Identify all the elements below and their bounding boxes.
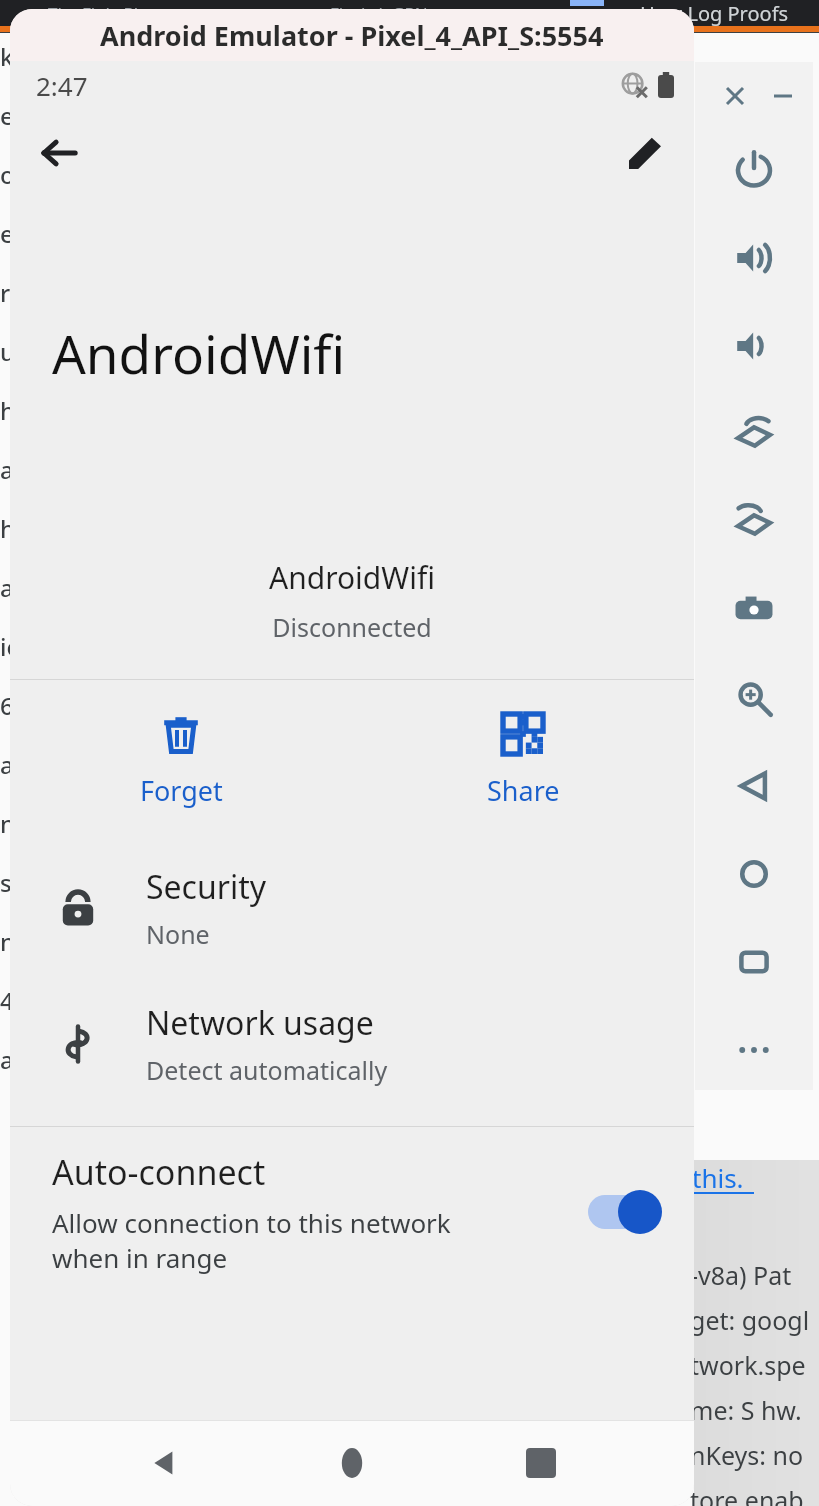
- button[interactable]: Volume up: [724, 228, 784, 288]
- staticText: 6: [0, 689, 14, 722]
- staticText: None: [146, 917, 210, 951]
- staticText: Fi i k GPN: [330, 2, 428, 25]
- staticText: Disconnected: [10, 610, 694, 644]
- staticText: Forget: [140, 772, 223, 809]
- staticText: 2:47: [36, 68, 88, 103]
- staticText: 4: [0, 984, 14, 1017]
- staticText: a: [0, 748, 14, 781]
- staticText: n: [0, 925, 16, 958]
- button[interactable]: Back: [724, 756, 784, 816]
- staticText: u: [0, 335, 16, 368]
- staticText: e: [0, 99, 14, 132]
- staticText: o: [0, 158, 15, 191]
- staticText: Android Emulator - Pixel_4_API_S:5554: [100, 17, 604, 54]
- button[interactable]: Security: [10, 840, 694, 976]
- button[interactable]: Rotate left: [724, 404, 784, 464]
- staticText: Network usage: [146, 1001, 374, 1045]
- button[interactable]: Edit: [614, 122, 676, 184]
- staticText: Security: [146, 865, 267, 909]
- button[interactable]: Close: [721, 82, 749, 110]
- button[interactable]: Forget: [10, 680, 352, 840]
- button[interactable]: Home: [317, 1428, 387, 1498]
- staticText: a: [0, 571, 14, 604]
- staticText: Share: [487, 772, 560, 809]
- staticText: nKeys: no: [690, 1438, 804, 1472]
- staticText: AndroidWifi: [52, 317, 346, 389]
- staticText: s/: [0, 866, 21, 899]
- staticText: Auto-connect: [52, 1149, 266, 1195]
- staticText: h: [0, 512, 16, 545]
- staticText: Detect automatically: [146, 1053, 388, 1087]
- button[interactable]: Auto-connect: [10, 1127, 694, 1297]
- button[interactable]: Power: [724, 140, 784, 200]
- staticText: this.: [692, 1160, 744, 1195]
- button[interactable]: Minimize: [769, 82, 797, 110]
- staticText: a: [0, 1043, 14, 1076]
- staticText: twork.spe: [690, 1348, 806, 1382]
- button[interactable]: More: [724, 1020, 784, 1080]
- staticText: Allow connection to this network when in…: [52, 1205, 522, 1275]
- staticText: r: [0, 276, 11, 309]
- button[interactable]: Volume down: [724, 316, 784, 376]
- staticText: a: [0, 453, 14, 486]
- staticText: How Log Proofs: [640, 0, 789, 27]
- button[interactable]: Recent apps: [506, 1428, 576, 1498]
- button[interactable]: Take screenshot: [724, 580, 784, 640]
- staticText: get: googl: [690, 1303, 810, 1337]
- button[interactable]: Back: [28, 122, 90, 184]
- staticText: k: [0, 40, 14, 73]
- staticText: e: [0, 217, 14, 250]
- staticText: h: [0, 394, 16, 427]
- button[interactable]: Share: [352, 680, 694, 840]
- staticText: n: [0, 807, 16, 840]
- button[interactable]: Zoom: [724, 668, 784, 728]
- button[interactable]: Home: [724, 844, 784, 904]
- button[interactable]: Network usage: [10, 976, 694, 1112]
- staticText: AndroidWifi: [10, 557, 694, 598]
- button[interactable]: Overview: [724, 932, 784, 992]
- button[interactable]: Back: [129, 1428, 199, 1498]
- staticText: -v8a) Pat: [690, 1258, 792, 1292]
- staticText: me: S hw.: [690, 1393, 802, 1427]
- button[interactable]: Rotate right: [724, 492, 784, 552]
- staticText: The Fiok Pl: [48, 2, 139, 25]
- staticText: io: [0, 630, 22, 663]
- staticText: tore.enab: [690, 1483, 804, 1506]
